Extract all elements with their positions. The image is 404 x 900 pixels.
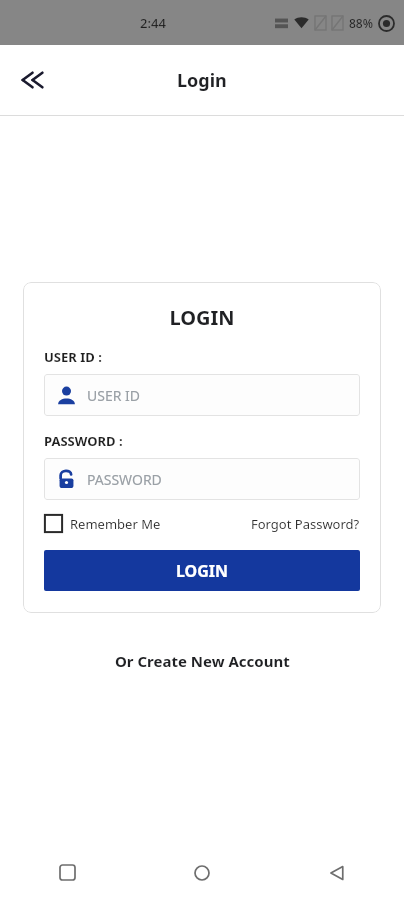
button[interactable]: Back <box>8 56 56 104</box>
button[interactable]: USER ID <box>44 374 360 416</box>
button[interactable]: Recent apps <box>0 845 134 900</box>
staticText: Login <box>177 68 227 93</box>
button[interactable]: Forgot Password? <box>251 515 360 533</box>
staticText: 2:44 <box>140 14 166 32</box>
staticText: USER ID : <box>44 348 102 366</box>
staticText: PASSWORD : <box>44 432 123 450</box>
staticText: Remember Me <box>70 515 161 533</box>
button[interactable]: LOGIN <box>44 550 360 591</box>
staticText: LOGIN <box>44 304 360 331</box>
button[interactable]: Back <box>269 845 404 900</box>
button[interactable]: PASSWORD <box>44 458 360 500</box>
staticText: USER ID <box>87 386 141 405</box>
staticText: 88% <box>349 15 373 31</box>
button[interactable]: Or Create New Account <box>105 647 300 675</box>
staticText: LOGIN <box>176 560 229 582</box>
button[interactable]: Home <box>134 845 269 900</box>
staticText: PASSWORD <box>87 470 162 489</box>
button[interactable]: Remember Me <box>44 514 161 533</box>
